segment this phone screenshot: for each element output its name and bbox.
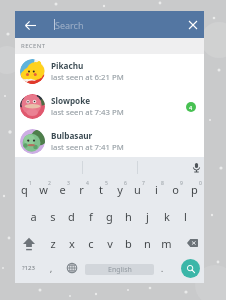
staticText: f [89,209,93,224]
staticText: , [50,263,53,274]
staticText: x [69,236,75,251]
button[interactable]: k [157,204,176,229]
button[interactable]: f [81,204,100,229]
staticText: g [106,209,113,224]
button[interactable]: c [81,231,100,256]
button[interactable]: 4 [72,180,91,205]
button[interactable]: g [100,204,119,229]
button[interactable]: Backspace [183,230,202,255]
staticText: j [146,209,149,224]
button[interactable]: ?123 [16,258,40,278]
button[interactable]: l [176,204,195,229]
button[interactable]: 8 [147,180,166,205]
staticText: u [134,182,141,197]
button[interactable]: v [100,231,119,256]
button[interactable]: z [43,231,62,256]
staticText: w [39,182,48,197]
staticText: n [144,236,151,251]
button[interactable]: b [119,231,138,256]
button[interactable]: 9 [166,180,185,205]
staticText: 0 [199,180,202,187]
staticText: o [172,182,179,197]
staticText: 6 [124,180,127,187]
staticText: 1 [29,180,32,187]
staticText: s [50,209,56,224]
staticText: b [125,236,132,251]
button[interactable]: , [44,258,58,278]
button[interactable]: Search [181,259,200,278]
staticText: y [117,182,123,197]
staticText: p [191,182,198,197]
button[interactable]: a [24,204,43,229]
button[interactable]: 1 [15,180,34,205]
button[interactable]: 3 [53,180,72,205]
button[interactable]: s [43,204,62,229]
staticText: last seen at 7:43 PM [51,107,124,118]
button[interactable]: 0 [185,180,204,205]
button[interactable]: 6 [110,180,129,205]
staticText: k [164,209,170,224]
staticText: 9 [180,180,183,187]
staticText: 5 [105,180,108,187]
staticText: Pikachu [51,60,84,71]
staticText: l [184,209,187,224]
staticText: t [99,182,103,197]
staticText: c [88,236,94,251]
staticText: q [21,182,28,197]
staticText: i [155,182,158,197]
staticText: 4 [86,180,89,187]
button[interactable]: Shift [19,231,38,256]
staticText: r [79,182,84,197]
staticText: Search [55,19,84,31]
staticText: last seen at 7:41 PM [51,142,124,153]
staticText: 7 [142,180,145,187]
staticText: 3 [67,180,70,187]
button[interactable]: d [62,204,81,229]
button[interactable]: Pikachu [15,54,204,89]
button[interactable]: 5 [91,180,110,205]
button[interactable]: 7 [128,180,147,205]
button[interactable]: English [85,264,154,275]
button[interactable]: h [119,204,138,229]
staticText: z [50,236,56,251]
staticText: ?123 [22,264,35,272]
staticText: 2 [48,180,51,187]
staticText: Bulbasaur [51,130,93,141]
button[interactable]: 2 [34,180,53,205]
staticText: last seen at 6:21 PM [51,72,124,83]
staticText: v [107,236,113,251]
button[interactable]: Slowpoke [15,89,204,124]
button[interactable]: Bulbasaur [15,124,204,159]
button[interactable]: n [138,231,157,256]
button[interactable]: Voice input [188,158,204,176]
button[interactable]: Change language [64,258,80,278]
staticText: . [161,263,164,274]
staticText: a [30,209,37,224]
staticText: d [68,209,75,224]
staticText: m [161,236,172,251]
staticText: Slowpoke [51,95,91,106]
staticText: 4 [189,104,193,111]
button[interactable]: . [155,258,169,278]
staticText: h [125,209,132,224]
staticText: e [59,182,66,197]
staticText: RECENT [21,42,46,50]
button[interactable]: Clear search [182,13,204,37]
button[interactable]: x [62,231,81,256]
button[interactable]: Back [19,13,41,37]
button[interactable]: m [157,231,176,256]
button[interactable]: j [138,204,157,229]
staticText: 8 [161,180,164,187]
staticText: English [108,265,132,275]
